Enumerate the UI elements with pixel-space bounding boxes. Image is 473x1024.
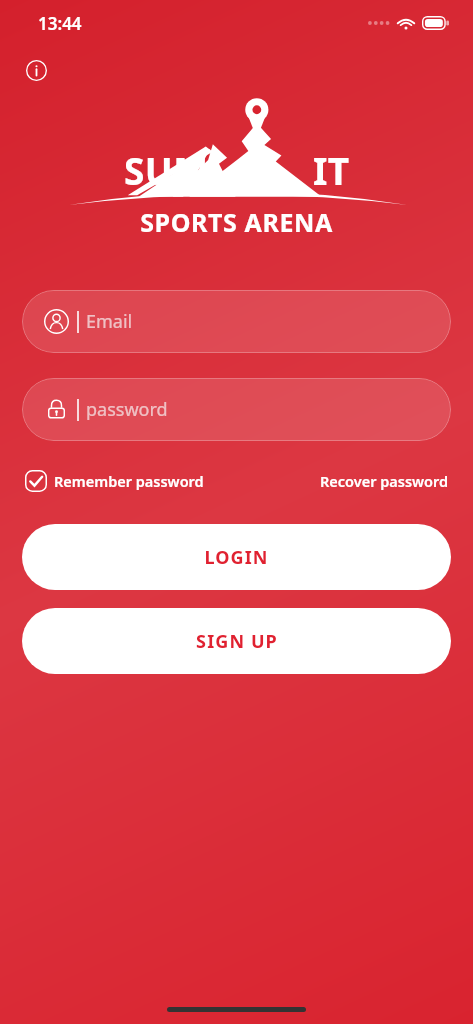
staticText: password [86,397,168,422]
button[interactable]: Password [22,378,451,441]
staticText: Email [86,309,133,334]
button[interactable]: SIGN UP [22,608,451,674]
button[interactable]: Information [18,52,54,88]
staticText: Remember password [54,471,204,491]
staticText: IT [313,145,350,195]
button[interactable]: Recover password [320,471,449,491]
staticText: LOGIN [204,545,269,570]
staticText: SUM [124,145,209,195]
button[interactable]: LOGIN [22,524,451,590]
staticText: 13:44 [38,12,82,35]
staticText: SPORTS ARENA [140,205,333,239]
staticText: SIGN UP [196,629,278,654]
button[interactable]: Remember password [24,469,204,493]
button[interactable]: Email [22,290,451,353]
staticText: Recover password [320,471,449,491]
